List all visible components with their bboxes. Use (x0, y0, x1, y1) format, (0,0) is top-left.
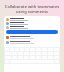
button[interactable] (6, 30, 58, 34)
staticText: Collaborate with teammates using comment… (3, 4, 61, 14)
button[interactable] (4, 36, 60, 41)
button[interactable] (4, 41, 60, 46)
button[interactable] (4, 17, 60, 21)
button[interactable] (4, 25, 60, 29)
button[interactable] (4, 21, 60, 25)
